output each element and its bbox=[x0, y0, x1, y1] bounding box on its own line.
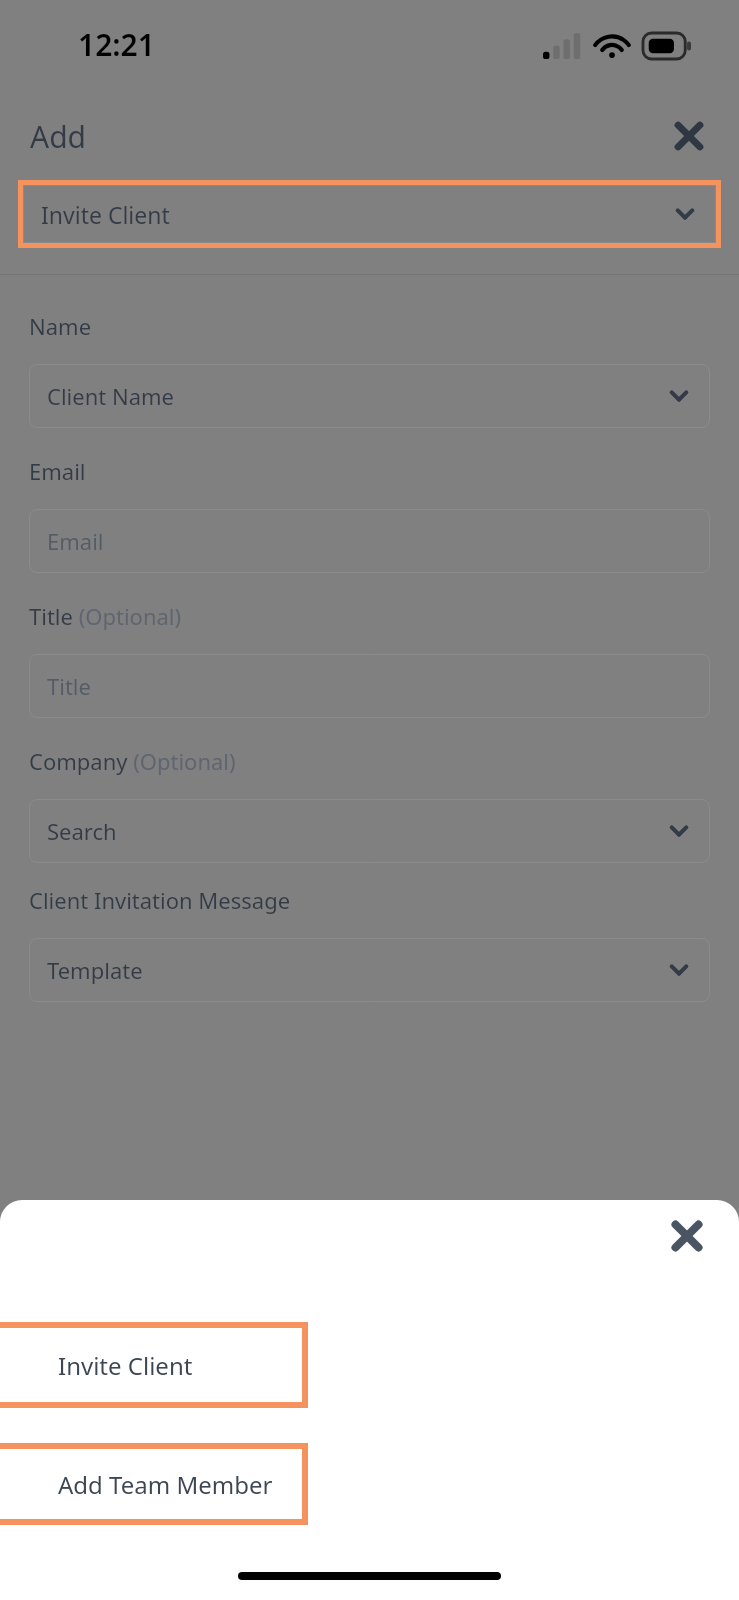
button[interactable]: Add Team Member bbox=[0, 1443, 308, 1525]
button[interactable]: Title bbox=[29, 654, 710, 718]
staticText: Company (Optional) bbox=[29, 746, 236, 776]
staticText: Title (Optional) bbox=[29, 601, 182, 631]
button[interactable]: Invite Client bbox=[23, 185, 716, 243]
staticText: Name bbox=[29, 311, 92, 341]
staticText: 12:21 bbox=[78, 24, 155, 65]
staticText: Client Name bbox=[47, 381, 174, 411]
staticText: Email bbox=[47, 526, 104, 556]
staticText: Add bbox=[30, 116, 87, 157]
staticText: Title bbox=[47, 671, 91, 701]
button[interactable]: Close bbox=[661, 108, 717, 164]
button[interactable]: Search bbox=[29, 799, 710, 863]
staticText: Email bbox=[29, 456, 86, 486]
button[interactable]: Template bbox=[29, 938, 710, 1002]
staticText: Invite Client bbox=[41, 199, 170, 230]
button[interactable]: Client Name bbox=[29, 364, 710, 428]
staticText: Client Invitation Message bbox=[29, 885, 291, 915]
button[interactable]: Invite Client bbox=[0, 1322, 308, 1408]
staticText: Template bbox=[47, 955, 143, 985]
button[interactable]: Email bbox=[29, 509, 710, 573]
button[interactable]: Close sheet bbox=[657, 1206, 717, 1266]
staticText: Invite Client bbox=[58, 1349, 193, 1382]
staticText: Search bbox=[47, 816, 117, 846]
staticText: Add Team Member bbox=[58, 1468, 273, 1501]
